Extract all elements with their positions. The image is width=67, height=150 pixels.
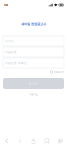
button[interactable]: 회원가입 (0, 92, 67, 97)
button[interactable]: Bookmarks (40, 136, 54, 146)
button[interactable]: Share (27, 136, 40, 146)
button[interactable]: 아이디 (3, 36, 64, 46)
staticText: 셰어링 한정중고사 (21, 22, 46, 26)
staticText: 자동로그인 (54, 70, 64, 73)
button[interactable]: 비밀번호 재확인 (3, 58, 64, 68)
staticText: 비밀번호 재확인 (5, 61, 27, 65)
staticText: 로그인 (29, 82, 38, 85)
button[interactable]: Back (0, 136, 13, 146)
button[interactable]: 비밀번호 (3, 47, 64, 57)
staticText: 회원가입 (29, 93, 37, 96)
button[interactable]: Tabs (54, 136, 67, 146)
staticText: 9:41 (4, 3, 8, 7)
button[interactable]: Forward (13, 136, 27, 146)
staticText: 아이디 (5, 39, 14, 43)
button[interactable]: 자동로그인 (3, 69, 64, 75)
staticText: 비밀번호 (5, 50, 17, 54)
